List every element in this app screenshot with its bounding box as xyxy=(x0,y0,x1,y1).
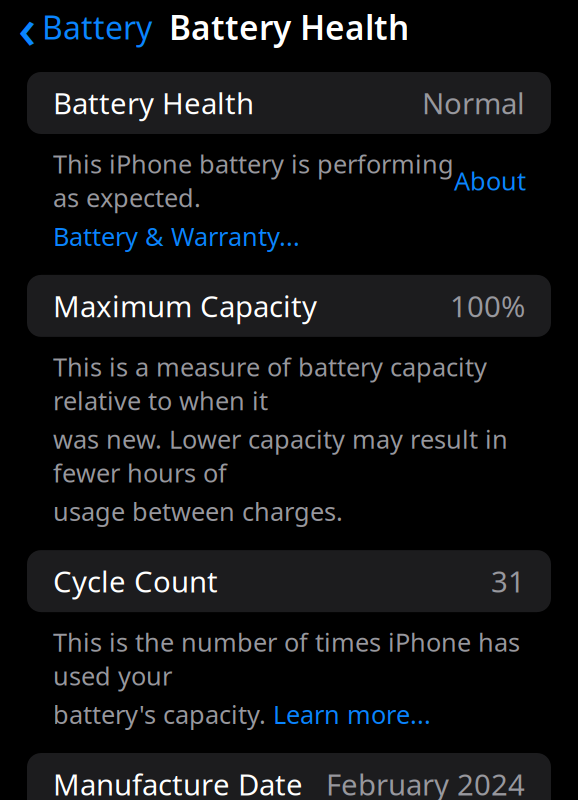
button[interactable]: ‹ xyxy=(14,0,156,70)
staticText: Battery Health xyxy=(169,5,409,49)
staticText: About xyxy=(454,164,526,197)
staticText: was new. Lower capacity may result in fe… xyxy=(53,422,508,489)
staticText: Learn more... xyxy=(273,697,431,731)
button[interactable]: Maximum Capacity xyxy=(27,275,551,337)
staticText: Battery xyxy=(42,6,152,48)
staticText: Battery & Warranty... xyxy=(53,219,300,253)
staticText: battery's capacity. xyxy=(53,697,273,731)
staticText: This iPhone battery is performing as exp… xyxy=(53,147,454,214)
staticText: Cycle Count xyxy=(53,562,218,601)
staticText: This is the number of times iPhone has u… xyxy=(53,625,520,692)
button[interactable]: Cycle Count xyxy=(27,550,551,612)
staticText: 100% xyxy=(450,286,525,325)
button[interactable]: Manufacture Date xyxy=(27,753,551,800)
staticText: usage between charges. xyxy=(53,494,343,528)
staticText: Maximum Capacity xyxy=(53,286,317,325)
staticText: ‹ xyxy=(18,0,36,64)
button[interactable]: Battery Health xyxy=(27,72,551,134)
staticText: Manufacture Date xyxy=(53,765,303,800)
staticText: Battery Health xyxy=(53,83,254,122)
staticText: This is a measure of battery capacity re… xyxy=(53,350,487,417)
staticText: 31 xyxy=(491,562,525,601)
staticText: February 2024 xyxy=(326,765,525,800)
staticText: Normal xyxy=(422,83,525,122)
